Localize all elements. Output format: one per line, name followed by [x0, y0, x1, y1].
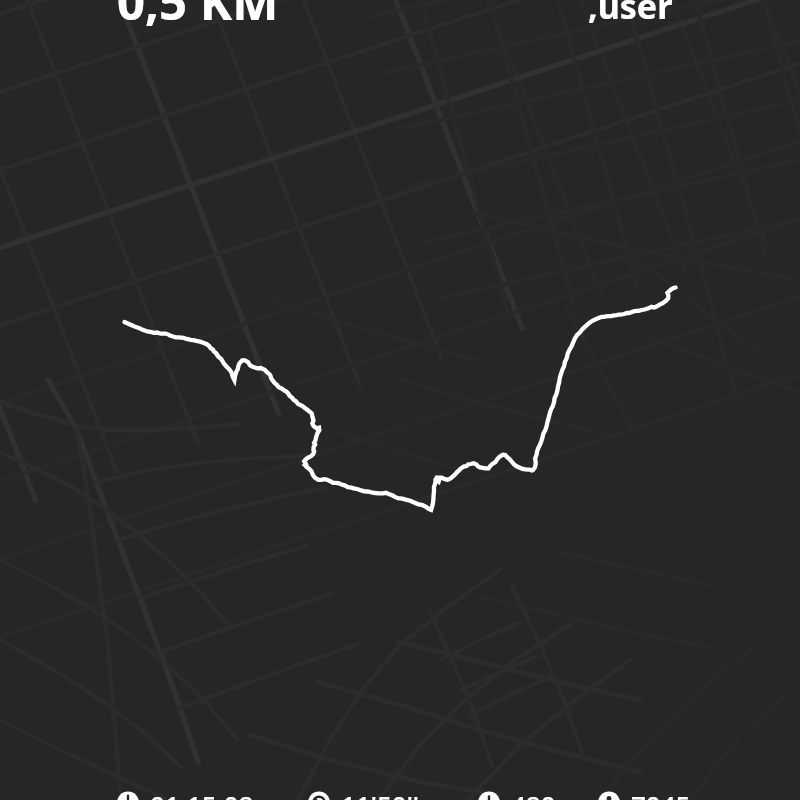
staticText: ,user [588, 0, 673, 29]
staticText: 01:15:08 [150, 787, 254, 800]
staticText: 480 [511, 787, 556, 800]
staticText: 7045 [631, 787, 691, 800]
button[interactable]: Route map [0, 0, 800, 800]
button[interactable]: 11'50'' [308, 780, 410, 800]
staticText: 11'50'' [341, 787, 419, 800]
button[interactable]: 480 [478, 780, 547, 800]
button[interactable]: ,user [395, 0, 800, 38]
staticText: 0,5 KM [117, 0, 279, 35]
button[interactable]: 7045 [598, 780, 682, 800]
button[interactable]: 01:15:08 [117, 780, 245, 800]
button[interactable]: 0,5 KM [0, 0, 395, 38]
